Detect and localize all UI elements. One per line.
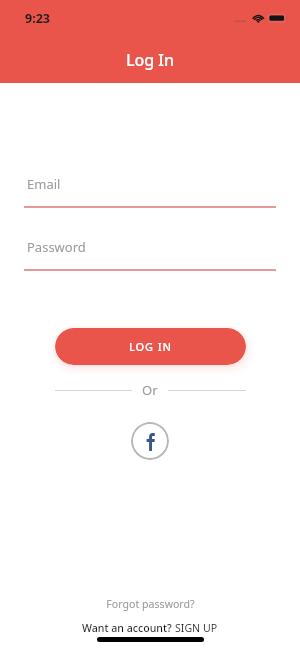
staticText: LOG IN [129,339,172,354]
staticText: Want an account? [82,621,175,635]
staticText: Or [142,381,158,399]
button[interactable]: Password [24,234,276,269]
staticText: 9:23 [25,10,50,27]
staticText: Email [27,175,61,193]
button[interactable]: Forgot password? [98,595,203,613]
button[interactable]: Want an account? [76,619,224,637]
button[interactable]: Email [24,171,276,206]
staticText: Log In [0,49,300,71]
staticText: SIGN UP [175,621,218,635]
staticText: Password [27,238,86,256]
button[interactable]: Sign in with Facebook [131,422,169,460]
button[interactable]: LOG IN [55,328,246,365]
